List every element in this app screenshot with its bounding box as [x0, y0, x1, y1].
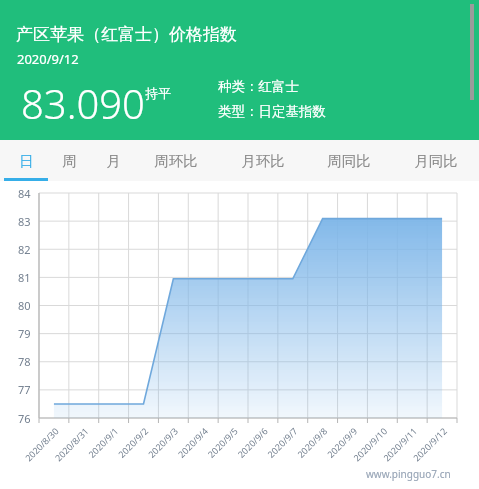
staticText: 月 [106, 152, 121, 170]
button[interactable]: 周环比 [142, 140, 210, 181]
button[interactable]: 月同比 [402, 140, 470, 181]
staticText: 83.090 [21, 76, 145, 130]
staticText: 2020/9/12 [17, 50, 79, 68]
staticText: 周 [62, 152, 77, 170]
staticText: 月同比 [414, 152, 458, 170]
button[interactable]: 周同比 [315, 140, 383, 181]
staticText: 周环比 [154, 152, 198, 170]
staticText: 月环比 [241, 152, 285, 170]
button[interactable]: 月环比 [229, 140, 297, 181]
staticText: 类型：日定基指数 [218, 103, 326, 120]
button[interactable]: 周 [47, 140, 91, 181]
button[interactable]: 月 [91, 140, 135, 181]
staticText: 持平 [145, 85, 171, 101]
button[interactable]: 日 [4, 140, 48, 181]
staticText: 产区苹果（红富士）价格指数 [16, 24, 237, 45]
staticText: 种类：红富士 [218, 78, 299, 95]
staticText: 日 [19, 152, 34, 170]
staticText: 周同比 [327, 152, 371, 170]
